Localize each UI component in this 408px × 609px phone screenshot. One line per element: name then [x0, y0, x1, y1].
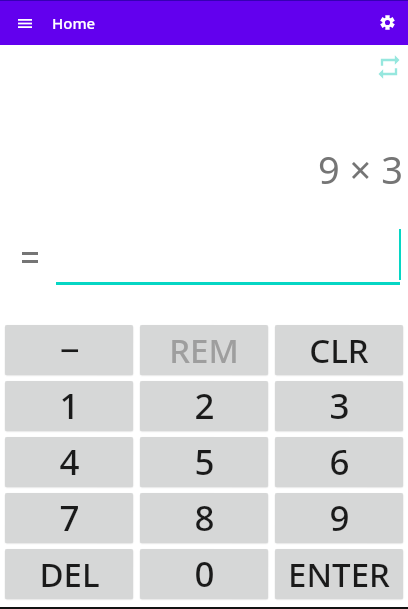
staticText: 0 [194, 550, 215, 598]
staticText: CLR [309, 328, 369, 373]
staticText: 9 [329, 494, 350, 542]
staticText: 3 [329, 382, 350, 430]
button[interactable]: DEL [5, 549, 133, 599]
button[interactable]: 2 [140, 381, 268, 431]
staticText: 8 [194, 494, 215, 542]
staticText: 5 [194, 438, 215, 486]
button[interactable]: 1 [5, 381, 133, 431]
button[interactable]: 5 [140, 437, 268, 487]
staticText: 9 × 3 [318, 143, 403, 195]
staticText: 6 [329, 438, 350, 486]
staticText: REM [169, 328, 239, 373]
button[interactable]: − [5, 325, 133, 375]
staticText: − [59, 326, 80, 374]
button[interactable]: Repeat [374, 52, 404, 82]
button[interactable]: 3 [275, 381, 403, 431]
button[interactable]: 4 [5, 437, 133, 487]
button[interactable]: 7 [5, 493, 133, 543]
staticText: DEL [39, 552, 100, 597]
button[interactable]: REM [140, 325, 268, 375]
staticText: Home [52, 13, 96, 33]
staticText: 4 [59, 438, 80, 486]
button[interactable]: 8 [140, 493, 268, 543]
button[interactable]: 0 [140, 549, 268, 599]
button[interactable]: 9 [275, 493, 403, 543]
staticText: 2 [194, 382, 215, 430]
button[interactable]: Settings [369, 4, 406, 41]
button[interactable]: 6 [275, 437, 403, 487]
button[interactable]: Result input field [56, 228, 400, 284]
staticText: 7 [59, 494, 80, 542]
button[interactable]: ENTER [275, 549, 403, 599]
staticText: 1 [59, 382, 80, 430]
button[interactable]: CLR [275, 325, 403, 375]
staticText: ENTER [288, 552, 390, 597]
button[interactable]: Menu [6, 4, 43, 41]
